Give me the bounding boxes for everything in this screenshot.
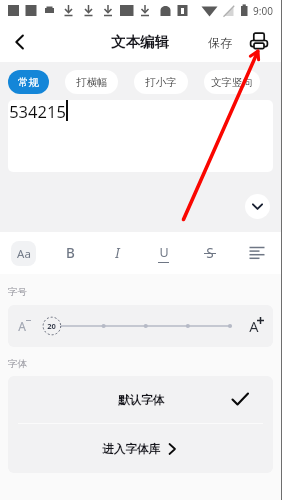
staticText: 打横幅 xyxy=(76,76,108,89)
staticText: I xyxy=(115,244,120,262)
staticText: 默认字体 xyxy=(118,393,164,407)
staticText: 534215 xyxy=(9,100,66,122)
button[interactable]: 打小字 xyxy=(134,70,188,94)
staticText: B xyxy=(66,244,75,262)
staticText: 保存 xyxy=(208,35,232,50)
staticText: 字体 xyxy=(8,358,27,370)
staticText: A xyxy=(249,316,259,336)
button[interactable]: Bold xyxy=(54,237,86,269)
staticText: A xyxy=(18,318,26,334)
button[interactable]: Align left xyxy=(241,237,273,269)
staticText: 文本编辑 xyxy=(111,33,169,51)
button[interactable]: Back xyxy=(0,22,40,62)
staticText: 进入字体库 xyxy=(102,442,160,456)
button[interactable]: 常规 xyxy=(8,70,49,94)
button[interactable]: 保存 xyxy=(204,27,236,57)
button[interactable]: Italic xyxy=(101,237,133,269)
button[interactable]: 打横幅 xyxy=(65,70,118,94)
staticText: 20 xyxy=(47,321,56,331)
button[interactable]: Text style xyxy=(7,237,39,269)
staticText: S xyxy=(206,244,214,262)
button[interactable]: 进入字体库 xyxy=(8,424,273,473)
button[interactable]: 默认字体 xyxy=(8,376,273,423)
button[interactable]: Collapse editor xyxy=(245,194,270,219)
staticText: 常规 xyxy=(18,76,39,89)
staticText: Aa xyxy=(17,246,31,262)
staticText: 打小字 xyxy=(145,76,177,89)
button[interactable]: Print xyxy=(242,25,276,59)
staticText: 字号 xyxy=(8,286,27,298)
button[interactable]: 文字竖向 xyxy=(204,70,260,94)
staticText: 9:00 xyxy=(253,4,273,18)
button[interactable]: Underline xyxy=(147,237,179,269)
button[interactable]: Strikethrough xyxy=(194,237,226,269)
button[interactable]: 534215 xyxy=(8,100,273,172)
staticText: U xyxy=(159,244,169,261)
staticText: 文字竖向 xyxy=(211,76,253,89)
